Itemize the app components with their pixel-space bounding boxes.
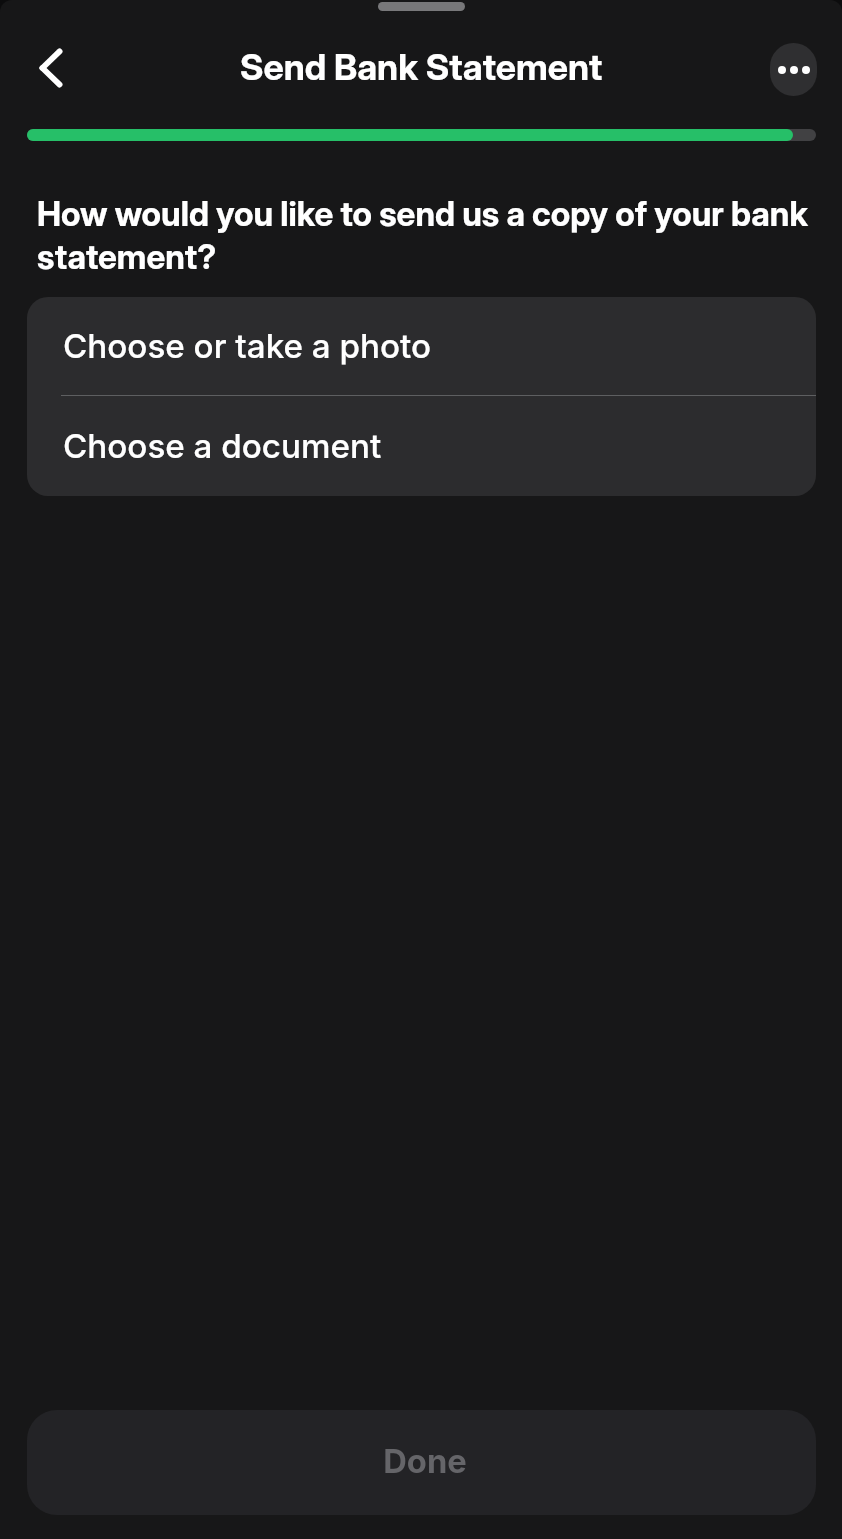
button[interactable]: Done: [27, 1410, 816, 1515]
button[interactable]: Choose or take a photo: [27, 297, 816, 395]
button[interactable]: Choose a document: [27, 396, 816, 496]
button[interactable]: Back: [21, 38, 81, 98]
staticText: Done: [383, 1441, 467, 1481]
staticText: Choose a document: [63, 426, 382, 466]
button[interactable]: More options: [770, 43, 817, 96]
staticText: Choose or take a photo: [63, 326, 432, 366]
staticText: Send Bank Statement: [240, 45, 603, 89]
staticText: How would you like to send us a copy of …: [37, 194, 818, 278]
